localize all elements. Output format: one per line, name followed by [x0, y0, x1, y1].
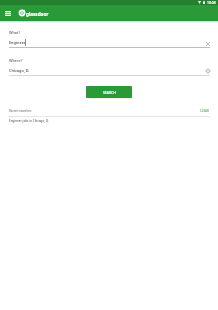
button[interactable]: Engineer jobs in Chicago, IL: [0, 116, 218, 125]
staticText: Engineer: [9, 40, 26, 45]
staticText: Chicago, IL: [9, 68, 30, 73]
staticText: glassdoor: [26, 11, 49, 17]
staticText: Recent searches: [9, 109, 32, 113]
button[interactable]: Use current location: [203, 66, 212, 75]
staticText: What?: [9, 30, 21, 35]
staticText: SEARCH: [103, 90, 116, 95]
button[interactable]: Open navigation menu: [3, 8, 13, 18]
staticText: Engineer jobs in Chicago, IL: [9, 119, 49, 123]
staticText: CLEAR: [200, 109, 209, 113]
staticText: 18:08: [207, 0, 216, 5]
button[interactable]: Clear what field: [204, 40, 212, 48]
button[interactable]: CLEAR: [200, 108, 209, 112]
staticText: Where?: [9, 58, 23, 63]
button[interactable]: SEARCH: [86, 86, 132, 98]
